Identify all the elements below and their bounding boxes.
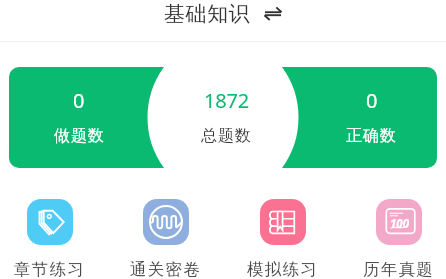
staticText: 章节练习 [14,259,85,279]
staticText: 1872 [204,87,249,114]
button[interactable]: Switch subject [262,4,282,24]
staticText: 历年真题 [363,259,434,279]
staticText: 做题数 [54,126,105,146]
button[interactable]: 章节练习 [14,199,85,279]
staticText: 0 [366,87,378,114]
staticText: 基础知识 [164,1,251,27]
staticText: 通关密卷 [130,259,201,279]
button[interactable]: 100 [363,199,434,279]
staticText: 0 [73,87,85,114]
staticText: 总题数 [201,126,252,146]
staticText: 正确数 [346,126,397,146]
staticText: 模拟练习 [247,259,318,279]
button[interactable]: 模拟练习 [247,199,318,279]
button[interactable]: 通关密卷 [130,199,201,279]
staticText: 100 [390,216,410,232]
